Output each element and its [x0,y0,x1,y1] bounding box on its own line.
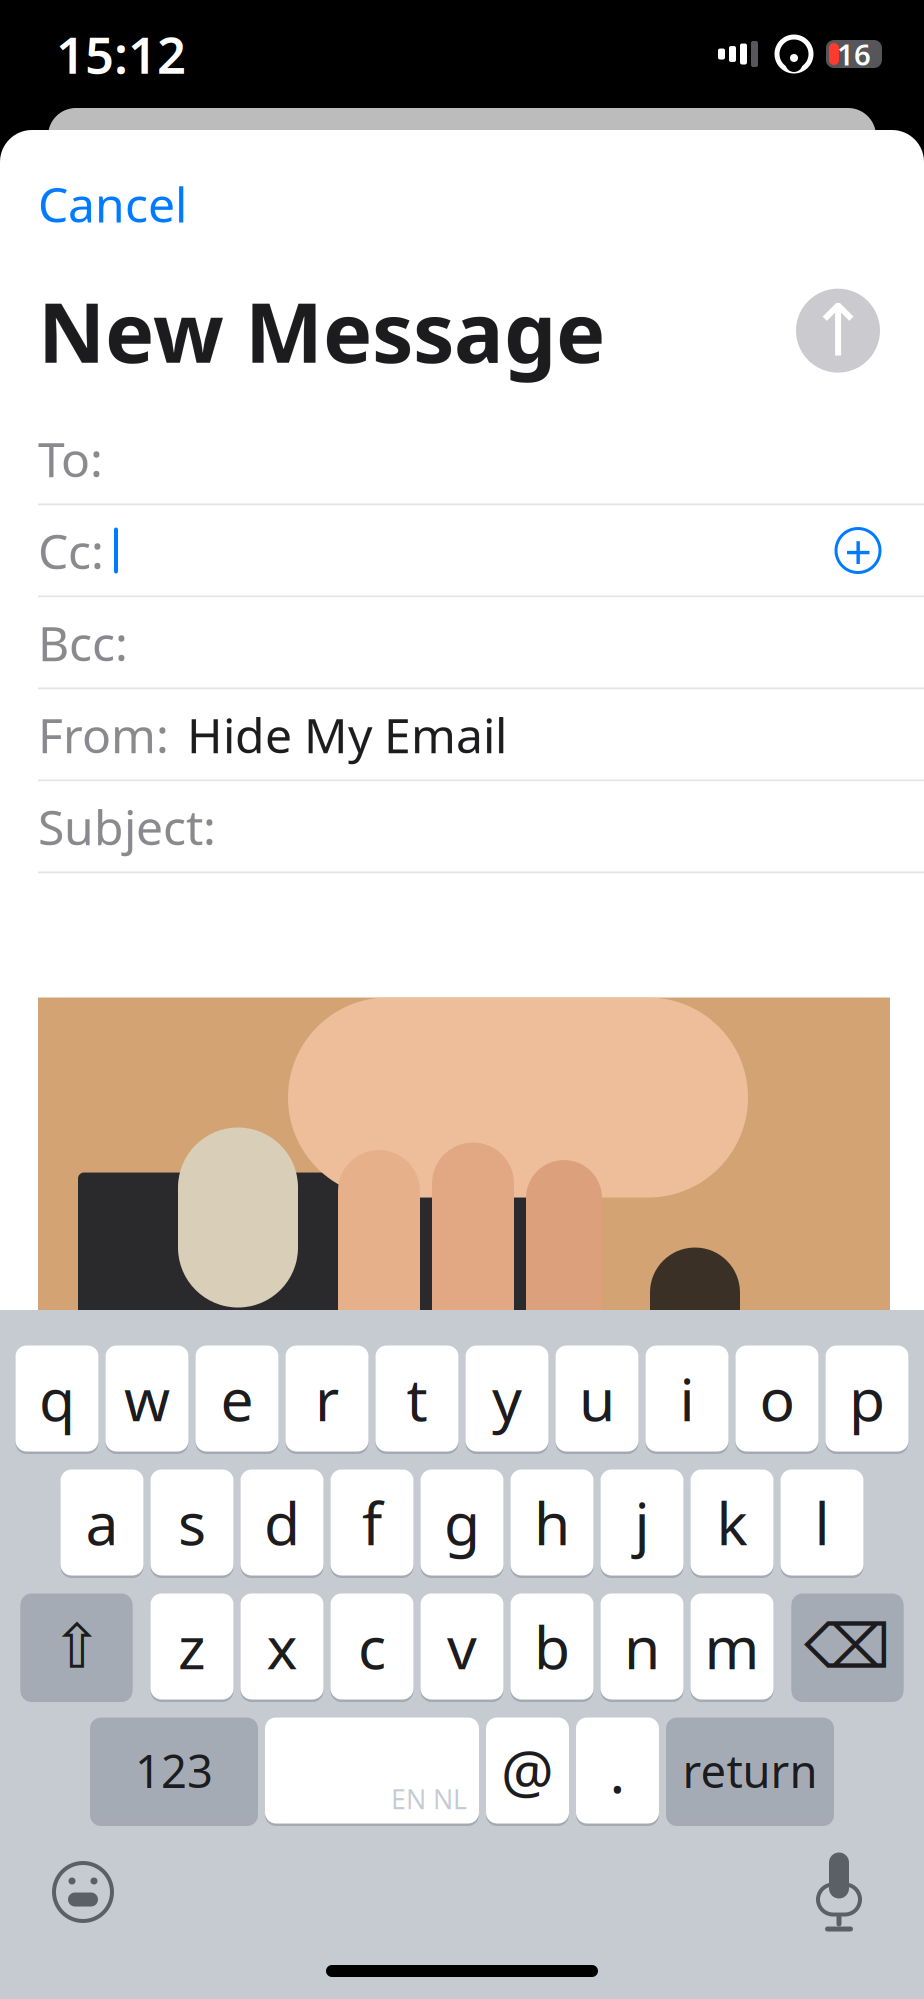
staticText: x [266,1607,297,1685]
button[interactable]: s [150,1467,233,1578]
button[interactable]: a [60,1467,143,1578]
staticText: 15:12 [56,20,186,88]
staticText: u [579,1359,615,1437]
button[interactable]: Emoji [46,1855,120,1929]
staticText: Subject: [38,795,216,858]
button[interactable]: . [576,1715,659,1826]
button[interactable]: Delete [791,1591,903,1702]
staticText: ⌫ [804,1612,891,1681]
staticText: s [178,1483,206,1561]
button[interactable]: j [600,1467,683,1578]
staticText: p [849,1359,885,1437]
staticText: e [220,1359,253,1437]
staticText: n [624,1607,660,1685]
button[interactable]: b [510,1591,593,1702]
button[interactable]: h [510,1467,593,1578]
button[interactable]: Shift [20,1591,132,1702]
staticText: Bcc: [38,611,128,674]
staticText: . [609,1731,625,1809]
staticText: c [358,1607,386,1685]
button[interactable]: @ [486,1715,569,1826]
staticText: Hide My Email [187,703,507,766]
button[interactable]: p [825,1343,908,1454]
staticText: r [315,1359,339,1437]
staticText: New Message [38,276,605,385]
button[interactable]: Subject: [0,781,924,871]
button[interactable]: z [150,1591,233,1702]
staticText: q [39,1359,75,1437]
button[interactable]: space [265,1715,479,1826]
button[interactable]: Cancel [38,162,187,246]
button[interactable]: t [375,1343,458,1454]
staticText: a [85,1483,118,1561]
button[interactable]: e [195,1343,278,1454]
button[interactable]: 123 [90,1715,258,1826]
button[interactable]: g [420,1467,503,1578]
staticText: To: [38,427,103,490]
button[interactable]: x [240,1591,323,1702]
button[interactable]: d [240,1467,323,1578]
button[interactable]: m [690,1591,773,1702]
staticText: ↑ [808,290,868,371]
staticText: return [682,1740,817,1801]
staticText: w [124,1359,170,1437]
staticText: v [447,1607,477,1685]
staticText: o [759,1359,794,1437]
staticText: EN NL [391,1781,467,1816]
staticText: b [534,1607,570,1685]
button[interactable]: k [690,1467,773,1578]
button[interactable]: w [105,1343,188,1454]
button[interactable]: y [465,1343,548,1454]
button[interactable]: l [780,1467,863,1578]
staticText: z [178,1607,206,1685]
button[interactable]: c [330,1591,413,1702]
button[interactable]: o [735,1343,818,1454]
staticText: f [362,1483,382,1561]
button[interactable]: i [645,1343,728,1454]
staticText: m [704,1607,759,1685]
button[interactable]: v [420,1591,503,1702]
staticText: Cancel [38,172,187,236]
staticText: d [264,1483,300,1561]
button[interactable]: Bcc: [0,597,924,687]
staticText: From: [38,703,169,766]
staticText: h [534,1483,570,1561]
staticText: + [844,519,871,582]
button[interactable]: q [15,1343,98,1454]
button[interactable]: f [330,1467,413,1578]
button[interactable]: Cc: [0,505,924,595]
button[interactable]: From: [0,689,924,779]
staticText: ⇧ [51,1612,102,1681]
staticText: t [406,1359,427,1437]
button[interactable]: Send [794,287,882,375]
button[interactable]: Dictate [802,1850,876,1934]
staticText: 16 [837,34,871,73]
staticText: l [814,1483,829,1561]
staticText: @ [501,1731,554,1809]
staticText: g [444,1483,480,1561]
staticText: Cc: [38,519,104,582]
button[interactable]: u [555,1343,638,1454]
staticText: k [716,1483,747,1561]
button[interactable]: r [285,1343,368,1454]
button[interactable]: To: [0,413,924,503]
button[interactable]: n [600,1591,683,1702]
staticText: j [634,1483,649,1561]
staticText: i [679,1359,694,1437]
button[interactable]: return [666,1715,834,1826]
staticText: y [492,1359,522,1437]
staticText: 123 [135,1740,213,1801]
